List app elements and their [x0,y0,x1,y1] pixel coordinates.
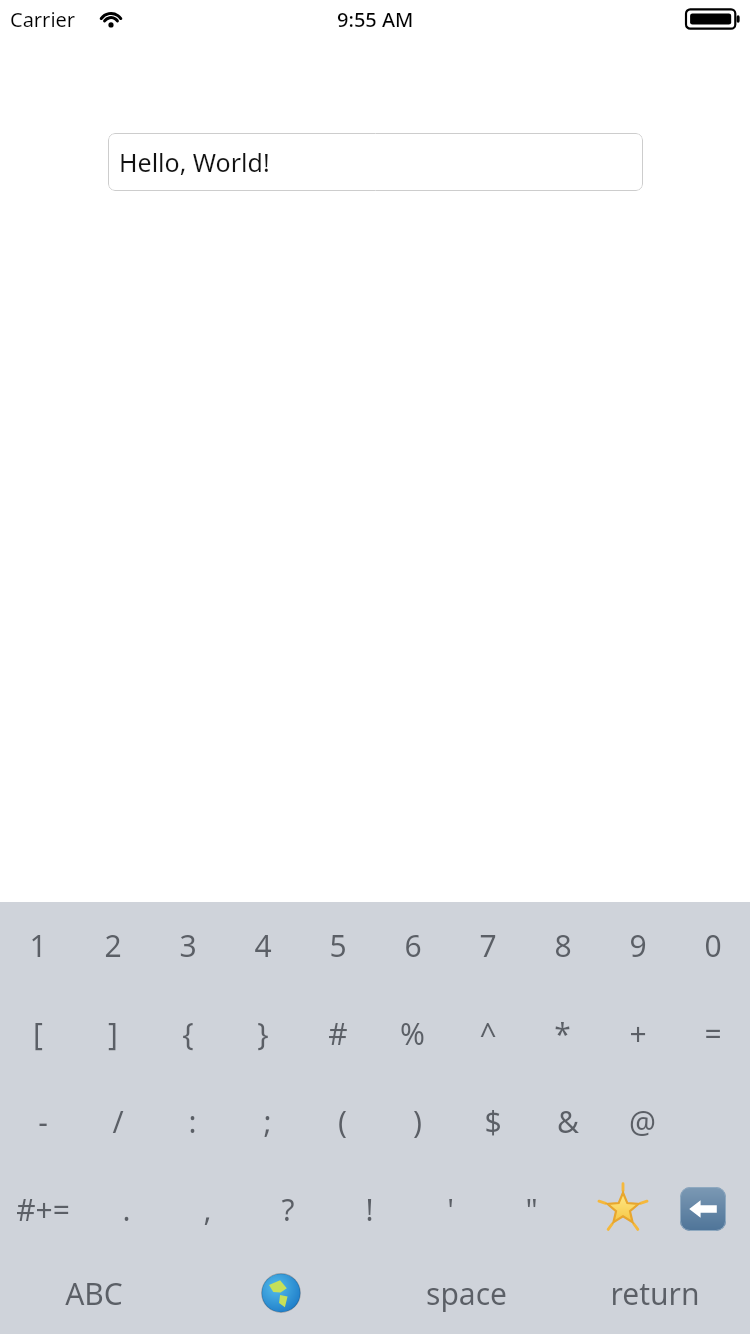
button[interactable]: / [80,1090,155,1152]
button[interactable]: . [86,1178,166,1240]
staticText: 9 [629,925,647,966]
button[interactable]: space [396,1262,536,1324]
staticText: / [112,1101,124,1142]
button[interactable]: [ [0,1002,75,1064]
staticText: ] [108,1013,118,1054]
button[interactable]: Delete [665,1178,740,1240]
button[interactable]: Star emoji [585,1178,660,1240]
staticText: & [557,1101,579,1142]
staticText: ? [281,1189,295,1230]
staticText: ' [447,1189,454,1230]
staticText: + [629,1013,647,1054]
staticText: , [203,1189,212,1230]
staticText: $ [484,1101,502,1142]
button[interactable]: = [675,1002,750,1064]
button[interactable]: 9 [600,914,675,976]
button[interactable]: ] [75,1002,150,1064]
staticText: space [426,1273,507,1314]
staticText: . [122,1189,131,1230]
staticText: Hello, World! [119,145,270,179]
button[interactable]: ! [329,1178,409,1240]
button[interactable]: ) [380,1090,455,1152]
staticText: 5 [329,925,347,966]
staticText: ( [338,1101,347,1142]
staticText: ; [263,1101,272,1142]
staticText: % [400,1013,425,1054]
staticText: @ [629,1101,656,1142]
button[interactable]: @ [605,1090,680,1152]
button[interactable]: 1 [0,914,75,976]
button[interactable]: } [225,1002,300,1064]
button[interactable]: ^ [450,1002,525,1064]
staticText: 9:55 AM [337,6,414,33]
button[interactable]: Next keyboard [246,1262,316,1324]
staticText: * [554,1013,571,1054]
staticText: ! [365,1189,374,1230]
button[interactable]: 4 [225,914,300,976]
staticText: 3 [179,925,197,966]
staticText: 2 [104,925,122,966]
staticText: = [704,1013,722,1054]
staticText: 8 [554,925,572,966]
button[interactable]: # [300,1002,375,1064]
button[interactable]: ( [305,1090,380,1152]
button[interactable]: 2 [75,914,150,976]
staticText: 7 [479,925,497,966]
button[interactable]: : [155,1090,230,1152]
staticText: } [257,1013,269,1054]
staticText: 0 [704,925,722,966]
staticText: " [525,1189,538,1230]
button[interactable]: , [167,1178,247,1240]
button[interactable]: * [525,1002,600,1064]
staticText: 1 [29,925,47,966]
staticText: #+= [16,1189,70,1230]
button[interactable]: ? [248,1178,328,1240]
staticText: Carrier [10,6,76,33]
button[interactable]: % [375,1002,450,1064]
staticText: # [328,1013,348,1054]
staticText: ^ [479,1013,497,1054]
button[interactable]: ; [230,1090,305,1152]
staticText: 4 [254,925,272,966]
button[interactable]: #+= [0,1178,86,1240]
staticText: ABC [65,1273,123,1314]
button[interactable]: Hello, World! [108,133,643,191]
staticText: [ [33,1013,43,1054]
staticText: { [182,1013,194,1054]
button[interactable]: ABC [38,1262,150,1324]
button[interactable]: $ [455,1090,530,1152]
button[interactable]: { [150,1002,225,1064]
button[interactable]: 5 [300,914,375,976]
button[interactable]: return [585,1262,725,1324]
staticText: 6 [404,925,422,966]
staticText: - [38,1101,48,1142]
button[interactable]: ' [410,1178,490,1240]
button[interactable]: 0 [675,914,750,976]
button[interactable]: & [530,1090,605,1152]
staticText: ) [413,1101,422,1142]
button[interactable]: - [5,1090,80,1152]
button[interactable]: 7 [450,914,525,976]
button[interactable]: 6 [375,914,450,976]
staticText: : [188,1101,197,1142]
button[interactable]: 3 [150,914,225,976]
button[interactable]: " [491,1178,571,1240]
button[interactable]: + [600,1002,675,1064]
staticText: return [610,1273,700,1314]
button[interactable]: 8 [525,914,600,976]
